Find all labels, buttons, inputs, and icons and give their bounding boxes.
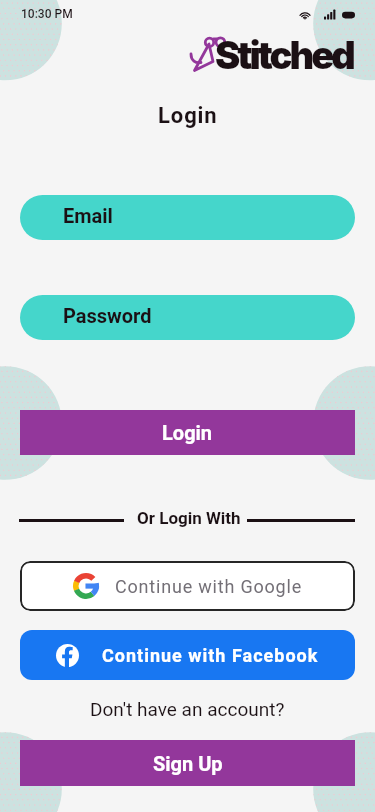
staticText: Or Login With — [137, 508, 241, 528]
staticText: Sign Up — [153, 752, 223, 775]
staticText: Email — [63, 204, 113, 227]
staticText: Continue with Facebook — [102, 645, 319, 666]
staticText: Continue with Google — [115, 576, 303, 597]
staticText: Login — [162, 421, 213, 444]
button[interactable]: Sign Up — [20, 740, 355, 786]
button[interactable]: Continue with Facebook — [20, 630, 355, 680]
staticText: 10:30 PM — [21, 7, 73, 21]
button[interactable]: Email — [20, 195, 355, 240]
staticText: Login — [158, 103, 218, 129]
button[interactable]: Password — [20, 295, 355, 340]
staticText: Stitched — [215, 32, 353, 78]
button[interactable]: Login — [20, 410, 355, 455]
button[interactable]: Continue with Google — [20, 561, 355, 611]
staticText: Don't have an account? — [90, 698, 285, 720]
staticText: Password — [63, 304, 152, 327]
